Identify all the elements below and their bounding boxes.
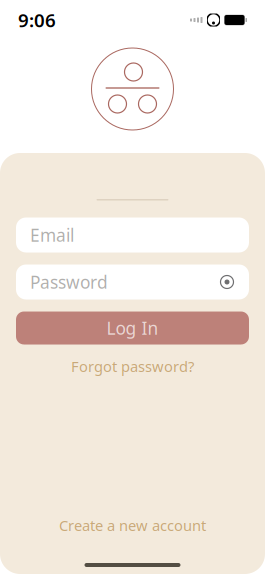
staticText: Email	[30, 223, 74, 246]
button[interactable]: Email	[16, 217, 249, 252]
button[interactable]: Create a new account	[49, 509, 216, 541]
staticText: 9:06	[18, 8, 56, 32]
button[interactable]: Log In	[16, 311, 249, 344]
button[interactable]: Password	[16, 264, 249, 299]
staticText: Create a new account	[59, 515, 206, 535]
button[interactable]: Forgot password?	[63, 351, 202, 381]
staticText: Password	[30, 270, 108, 293]
staticText: Forgot password?	[71, 356, 194, 376]
staticText: Log In	[106, 316, 158, 339]
